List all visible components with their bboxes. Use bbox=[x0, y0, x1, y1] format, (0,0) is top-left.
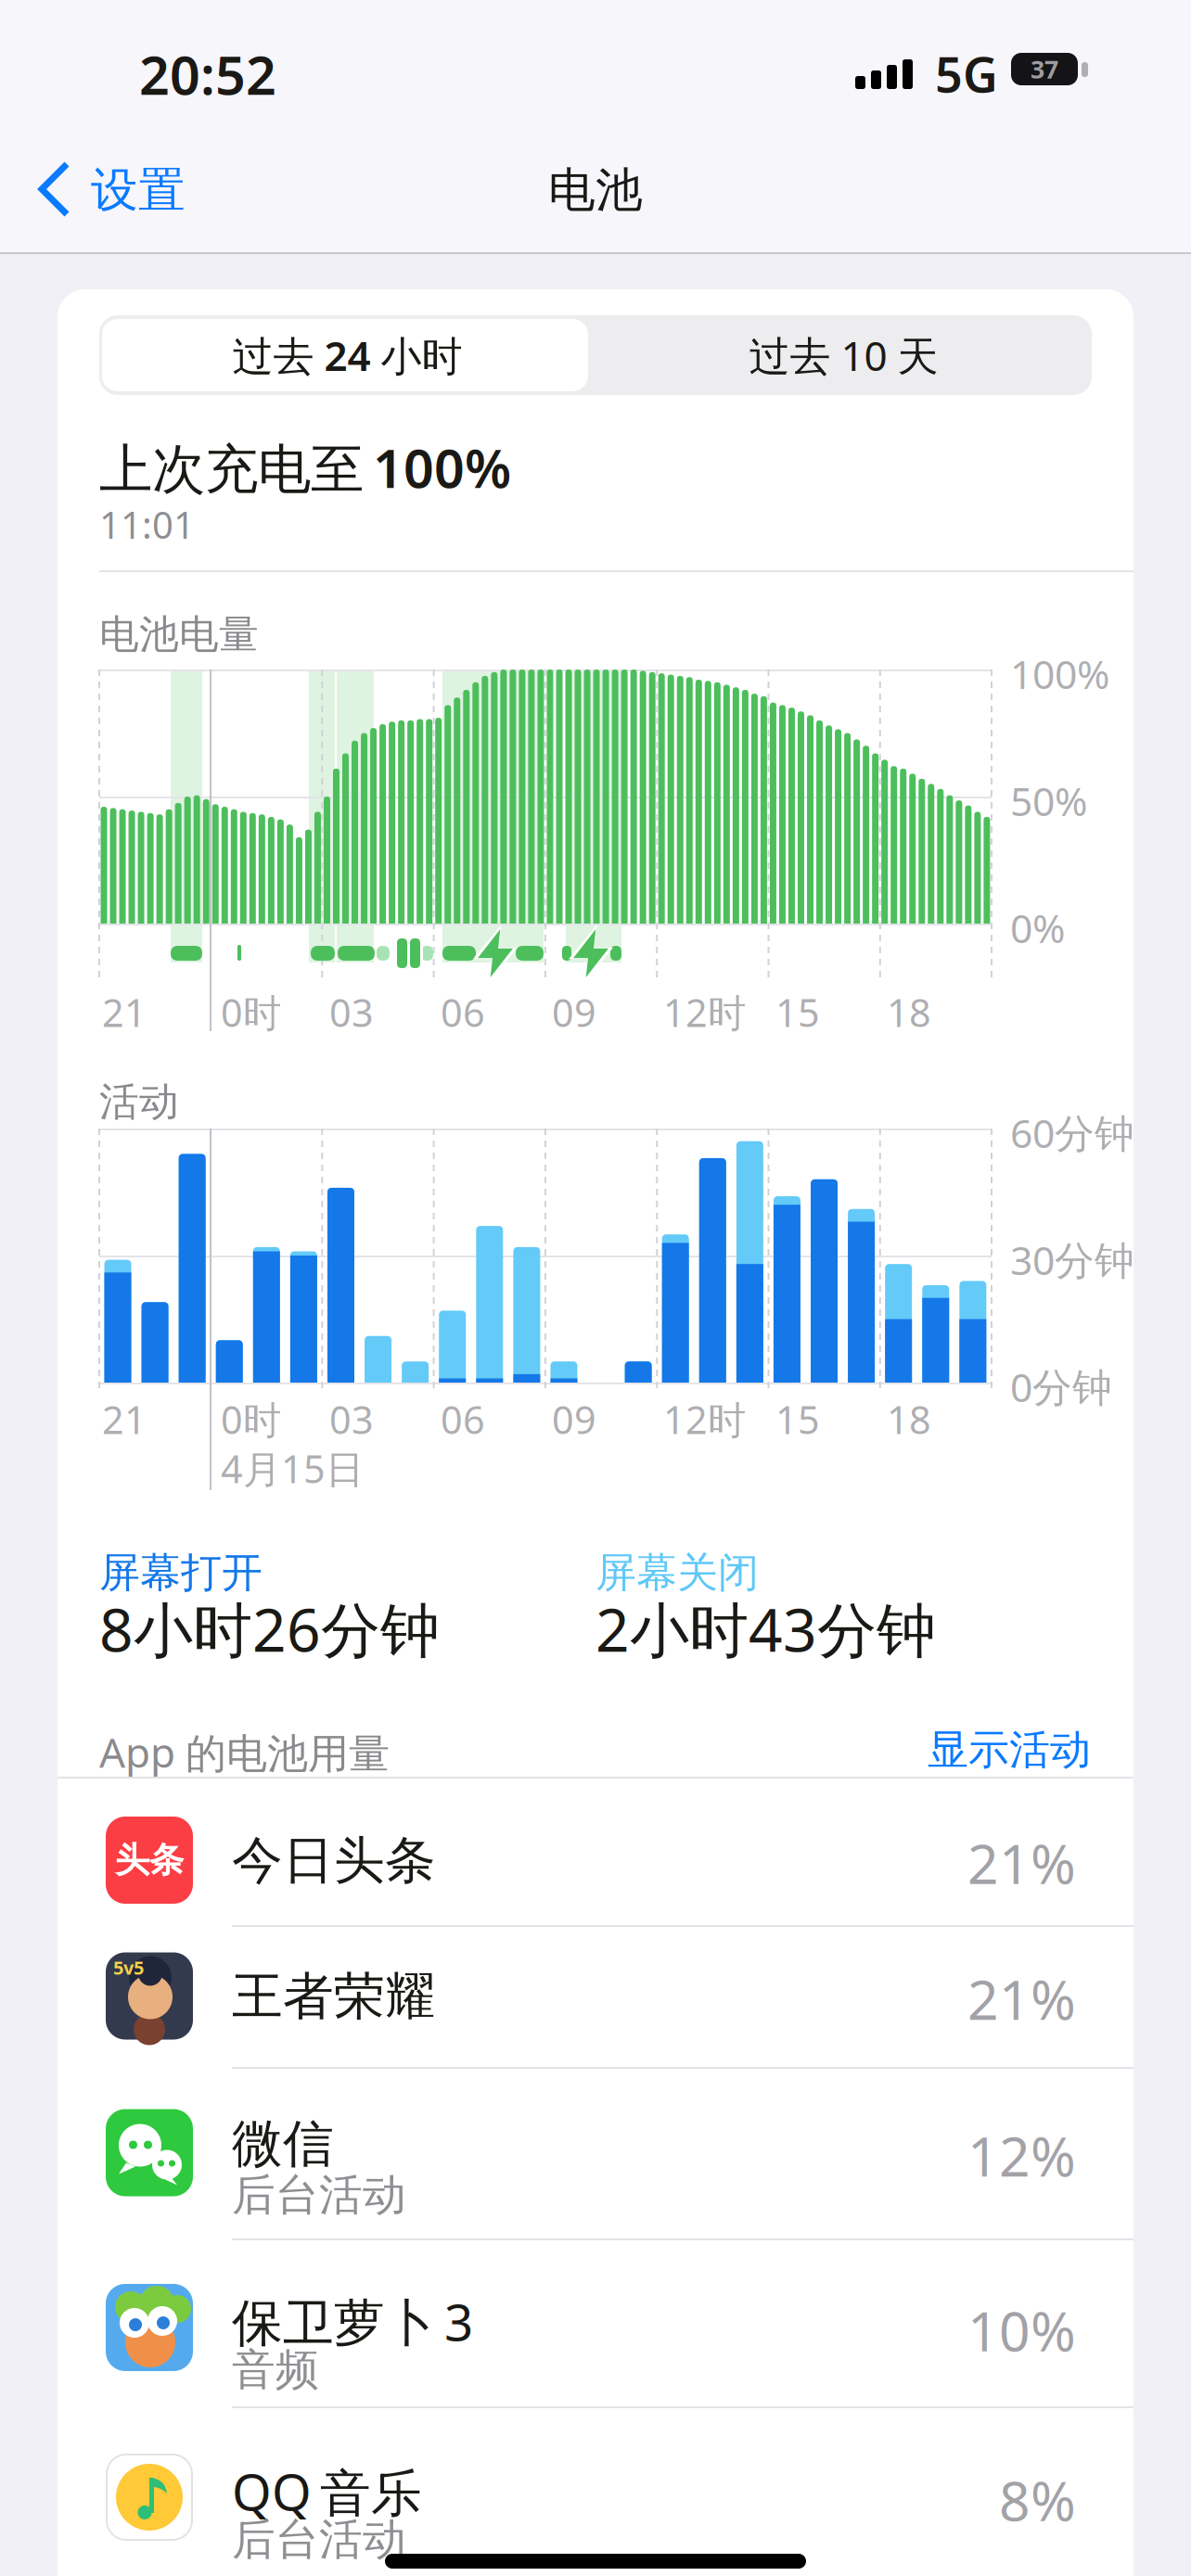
button[interactable]: 5v5 bbox=[0, 1926, 1191, 2068]
staticText: 5G bbox=[935, 42, 998, 106]
staticText: 设置 bbox=[91, 161, 186, 219]
staticText: 8小时26分钟 bbox=[99, 1589, 440, 1668]
staticText: 11:01 bbox=[99, 500, 195, 549]
staticText: 09 bbox=[552, 1394, 596, 1445]
staticText: 21 bbox=[102, 987, 147, 1038]
staticText: 50% bbox=[1010, 774, 1087, 827]
staticText: 上次充电至 100% bbox=[99, 432, 511, 503]
staticText: 10% bbox=[967, 2294, 1076, 2366]
staticText: 后台活动 bbox=[232, 2513, 406, 2566]
staticText: QQ 音乐 bbox=[232, 2457, 422, 2525]
staticText: 过去 24 小时 bbox=[232, 328, 462, 382]
staticText: 屏幕打开 bbox=[99, 1548, 263, 1598]
staticText: 5v5 bbox=[113, 1955, 144, 1980]
staticText: 18 bbox=[887, 1394, 931, 1445]
button[interactable]: 微信 bbox=[0, 2068, 1191, 2239]
staticText: 03 bbox=[329, 987, 374, 1038]
staticText: 0% bbox=[1010, 901, 1065, 954]
button[interactable]: QQ 音乐 bbox=[0, 2407, 1191, 2576]
staticText: 12% bbox=[967, 2119, 1076, 2192]
staticText: 21% bbox=[967, 1827, 1076, 1899]
staticText: 屏幕关闭 bbox=[595, 1548, 759, 1598]
staticText: 活动 bbox=[99, 1078, 179, 1126]
staticText: 12时 bbox=[663, 987, 746, 1038]
staticText: 18 bbox=[887, 987, 931, 1038]
staticText: 今日头条 bbox=[232, 1830, 436, 1892]
button[interactable]: 头条 bbox=[0, 1778, 1191, 1926]
staticText: 电池电量 bbox=[99, 610, 259, 659]
staticText: 06 bbox=[441, 1394, 485, 1445]
staticText: 王者荣耀 bbox=[232, 1965, 436, 2028]
staticText: 过去 10 天 bbox=[749, 328, 938, 382]
staticText: 21% bbox=[967, 1963, 1076, 2035]
staticText: 60分钟 bbox=[1010, 1106, 1134, 1159]
staticText: 21 bbox=[102, 1394, 147, 1445]
staticText: 微信 bbox=[232, 2113, 334, 2175]
staticText: 15 bbox=[775, 987, 820, 1038]
staticText: 2小时43分钟 bbox=[595, 1589, 936, 1668]
staticText: 15 bbox=[775, 1394, 820, 1445]
staticText: 保卫萝卜 3 bbox=[232, 2288, 473, 2355]
button[interactable]: 显示活动 bbox=[928, 1725, 1091, 1775]
staticText: 头条 bbox=[115, 1839, 184, 1881]
staticText: 音频 bbox=[232, 2343, 319, 2396]
staticText: 4月15日 bbox=[221, 1443, 364, 1494]
staticText: 20:52 bbox=[139, 39, 276, 110]
staticText: 0时 bbox=[221, 987, 281, 1038]
staticText: 37 bbox=[1031, 53, 1058, 85]
staticText: 30分钟 bbox=[1010, 1233, 1134, 1286]
staticText: 0时 bbox=[221, 1394, 281, 1445]
button[interactable]: 过去 10 天 bbox=[595, 315, 1092, 395]
staticText: 显示活动 bbox=[928, 1725, 1091, 1775]
staticText: 06 bbox=[441, 987, 485, 1038]
button[interactable]: 设置 bbox=[35, 159, 239, 219]
button[interactable]: 保卫萝卜 3 bbox=[0, 2239, 1191, 2407]
staticText: App 的电池用量 bbox=[99, 1725, 390, 1779]
staticText: 电池 bbox=[548, 161, 643, 219]
staticText: 100% bbox=[1010, 647, 1109, 700]
staticText: 12时 bbox=[663, 1394, 746, 1445]
staticText: 03 bbox=[329, 1394, 374, 1445]
staticText: 09 bbox=[552, 987, 596, 1038]
button[interactable]: 过去 24 小时 bbox=[99, 315, 595, 395]
staticText: 0分钟 bbox=[1010, 1360, 1112, 1413]
staticText: 8% bbox=[999, 2464, 1076, 2536]
staticText: 后台活动 bbox=[232, 2168, 406, 2222]
